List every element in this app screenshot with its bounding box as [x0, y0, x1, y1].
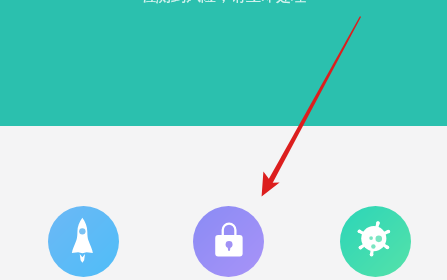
button[interactable]: App lock — [193, 206, 264, 277]
button[interactable]: Virus scan — [340, 206, 411, 277]
button[interactable]: Speed boost — [48, 206, 119, 277]
staticText: 检测到风险，请立即处理 — [0, 0, 447, 6]
